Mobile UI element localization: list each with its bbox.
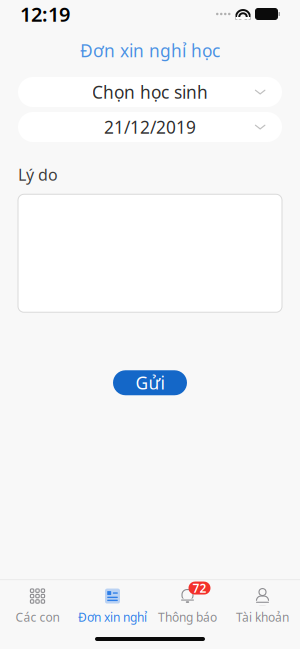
staticText: 72 bbox=[192, 580, 206, 596]
staticText: 12:19 bbox=[20, 1, 70, 27]
staticText: Tài khoản bbox=[236, 609, 289, 625]
staticText: Các con bbox=[15, 609, 59, 625]
staticText: Gửi bbox=[135, 371, 164, 394]
button[interactable]: Chọn học sinh bbox=[18, 77, 282, 107]
button[interactable]: Các con bbox=[0, 580, 75, 629]
button[interactable]: Gửi bbox=[113, 370, 187, 395]
staticText: Thông báo bbox=[158, 609, 217, 625]
staticText: 21/12/2019 bbox=[104, 115, 196, 138]
staticText: Lý do bbox=[18, 164, 58, 185]
staticText: Chọn học sinh bbox=[92, 80, 208, 103]
button[interactable]: Đơn xin nghỉ bbox=[75, 580, 150, 629]
button[interactable]: 72 bbox=[150, 580, 225, 629]
button[interactable]: 21/12/2019 bbox=[18, 112, 282, 142]
staticText: Đơn xin nghỉ học bbox=[80, 39, 220, 62]
button[interactable]: Tài khoản bbox=[225, 580, 300, 629]
staticText: Đơn xin nghỉ bbox=[78, 609, 147, 625]
